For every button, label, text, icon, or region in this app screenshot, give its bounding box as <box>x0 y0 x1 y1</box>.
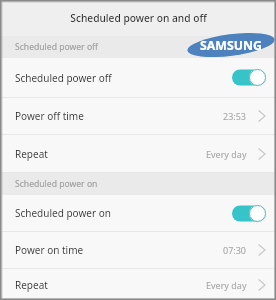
button[interactable]: Scheduled power on <box>0 195 276 231</box>
staticText: Repeat <box>15 147 48 161</box>
staticText: Scheduled power on and off <box>70 11 207 25</box>
staticText: Power on time <box>15 243 84 257</box>
button[interactable]: Power on time <box>0 232 276 268</box>
staticText: Every day <box>206 279 247 291</box>
staticText: Scheduled power on <box>15 206 111 220</box>
button[interactable]: Power off time <box>0 98 276 134</box>
staticText: Scheduled power on <box>15 178 98 190</box>
staticText: 07:30 <box>223 244 247 256</box>
staticText: Power off time <box>15 109 84 123</box>
staticText: Every day <box>206 148 247 160</box>
button[interactable]: Repeat <box>0 269 276 300</box>
staticText: Repeat <box>15 278 48 292</box>
staticText: 23:53 <box>223 110 247 122</box>
button[interactable]: Toggle <box>232 69 266 86</box>
staticText: Scheduled power off <box>15 71 112 85</box>
button[interactable]: Scheduled power off <box>0 58 276 97</box>
staticText: SAMSUNG <box>200 37 262 54</box>
button[interactable]: Repeat <box>0 135 276 172</box>
button[interactable]: Toggle <box>232 205 266 222</box>
staticText: Scheduled power off <box>15 41 98 53</box>
